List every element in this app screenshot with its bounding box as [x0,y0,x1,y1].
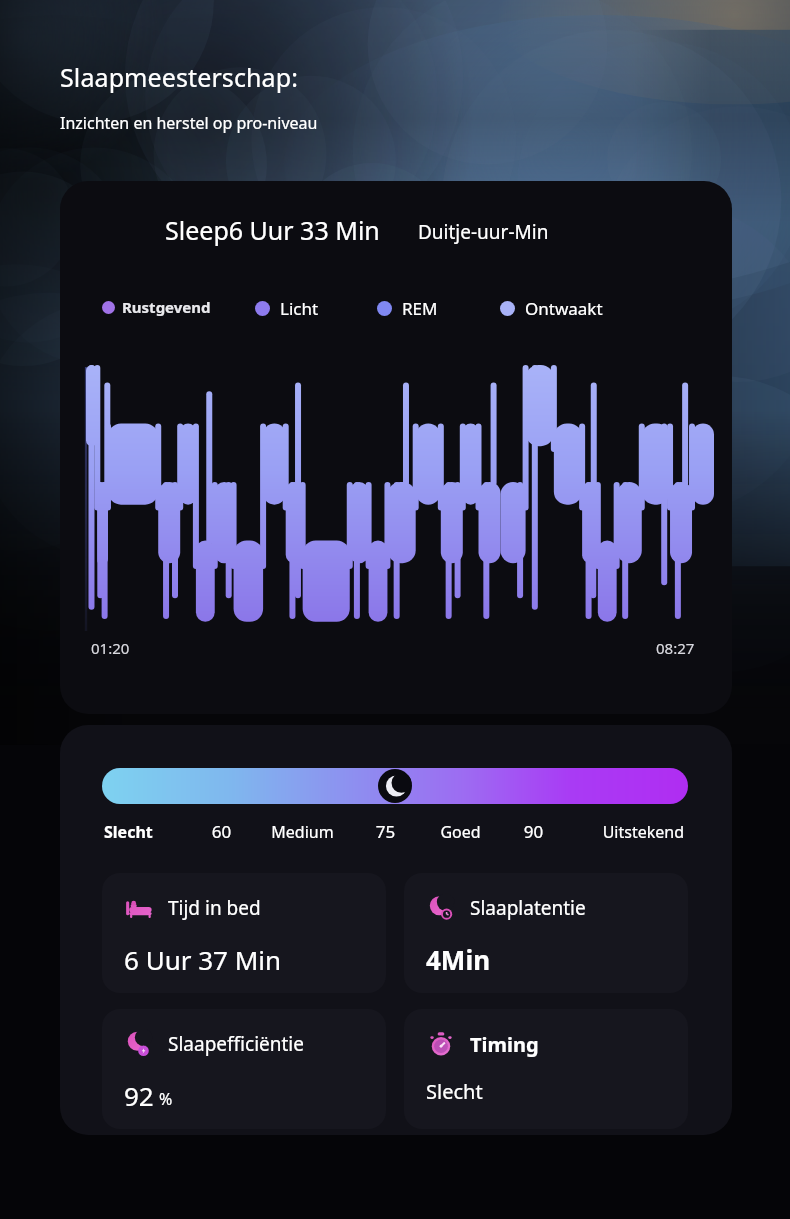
other: Time in bed [125,894,153,922]
staticText: Timing [470,1031,539,1058]
staticText: 6 Uur 37 Min [124,942,282,977]
button[interactable]: Timing [404,1009,688,1129]
button[interactable]: Rustgevend [102,297,211,317]
other: Sleep efficiency [125,1030,153,1058]
staticText: Inzichten en herstel op pro-niveau [60,112,318,134]
staticText: Duitje-uur-Min [418,219,549,245]
staticText: Slecht [426,1078,483,1105]
staticText: 92 [124,1078,154,1113]
staticText: REM [402,297,438,320]
staticText: Slecht [104,821,189,843]
staticText: Licht [280,297,319,320]
staticText: % [159,1088,173,1110]
other: Sleep latency [427,894,455,922]
staticText: Slaapefficiëntie [168,1031,304,1057]
button[interactable] [102,768,688,804]
staticText: Tijd in bed [168,895,261,921]
button[interactable]: Sleep efficiency [102,1009,386,1129]
staticText: Sleep6 Uur 33 Min [165,213,380,247]
staticText: Uitstekend [566,821,684,843]
staticText: 01:20 [91,638,130,658]
staticText: Rustgevend [122,297,211,317]
button[interactable]: Ontwaakt [500,297,603,320]
button[interactable]: Licht [255,297,319,320]
staticText: Goed [420,821,501,843]
staticText: Medium [254,821,351,843]
staticText: 90 [501,820,566,843]
staticText: Slaaplatentie [470,895,586,921]
staticText: 60 [189,820,254,843]
staticText: 4Min [426,942,491,977]
staticText: 75 [351,820,420,843]
button[interactable]: Time in bed [102,873,386,993]
other: Timing [427,1030,455,1058]
staticText: Ontwaakt [525,297,603,320]
button[interactable]: Sleep6 Uur 33 Min [60,181,732,714]
staticText: Slaapmeesterschap: [60,60,298,94]
button[interactable]: REM [377,297,438,320]
button[interactable]: Sleep latency [404,873,688,993]
staticText: 08:27 [656,638,695,658]
